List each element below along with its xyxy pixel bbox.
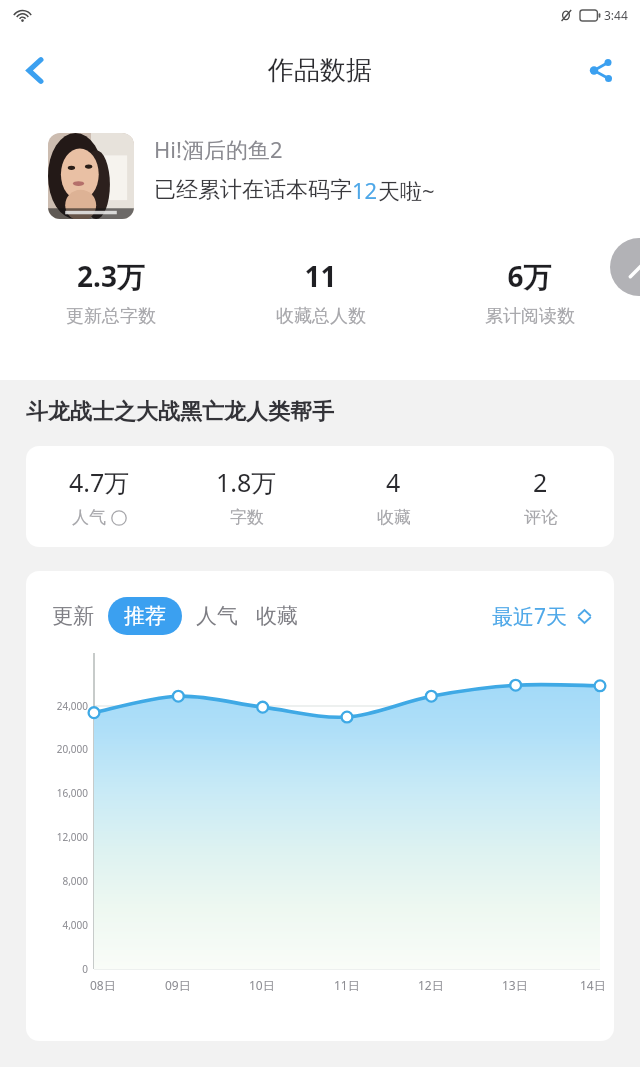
staticText: 推荐 (124, 603, 166, 629)
staticText: 斗龙战士之大战黑亡龙人类帮手 (26, 398, 334, 426)
button[interactable]: Edit (610, 238, 640, 296)
staticText: 0 (82, 962, 88, 976)
staticText: 12,000 (56, 830, 88, 844)
staticText: 4.7万 (69, 465, 130, 499)
staticText: Hi!酒后的鱼2 (154, 134, 283, 164)
staticText: 14日 (580, 977, 606, 993)
button[interactable]: 6万 (425, 257, 634, 328)
staticText: 3:44 (604, 7, 628, 23)
staticText: 收藏 (256, 603, 298, 629)
button[interactable]: 最近7天 (489, 599, 596, 634)
staticText: 16,000 (56, 786, 88, 800)
staticText: 12 (352, 175, 378, 205)
staticText: 4,000 (62, 918, 88, 932)
staticText: 收藏 (377, 507, 411, 528)
staticText: 累计阅读数 (485, 305, 575, 328)
button[interactable]: Share (574, 43, 628, 97)
staticText: 6万 (507, 257, 552, 295)
staticText: 更新总字数 (66, 305, 156, 328)
staticText: 已经累计在话本码字 (154, 176, 352, 204)
button[interactable]: 收藏 (254, 597, 300, 635)
staticText: 4 (386, 465, 401, 499)
staticText: 08日 (90, 977, 116, 993)
button[interactable]: 人气 (194, 597, 240, 635)
staticText: 2.3万 (77, 257, 145, 295)
button[interactable]: Back (8, 43, 62, 97)
staticText: 字数 (230, 507, 264, 528)
staticText: 天啦~ (378, 175, 435, 205)
button[interactable]: 11 (216, 257, 425, 328)
button[interactable]: 推荐 (108, 597, 182, 635)
button[interactable]: 4.7万 (26, 446, 614, 547)
staticText: 8,000 (62, 874, 88, 888)
staticText: 1.8万 (216, 465, 277, 499)
staticText: 20,000 (56, 742, 88, 756)
staticText: 12日 (418, 977, 444, 993)
staticText: 11 (304, 257, 337, 295)
staticText: 13日 (502, 977, 528, 993)
staticText: 11日 (334, 977, 360, 993)
staticText: 2 (533, 465, 548, 499)
staticText: 收藏总人数 (276, 305, 366, 328)
staticText: 作品数据 (268, 54, 372, 87)
staticText: 人气 (72, 507, 106, 528)
staticText: 10日 (249, 977, 275, 993)
staticText: 评论 (524, 507, 558, 528)
staticText: 24,000 (56, 699, 88, 713)
button[interactable]: 更新 (50, 597, 96, 635)
staticText: 最近7天 (492, 602, 568, 631)
staticText: 09日 (165, 977, 191, 993)
staticText: 更新 (52, 603, 94, 629)
button[interactable]: 2.3万 (6, 257, 216, 328)
staticText: 人气 (196, 603, 238, 629)
button[interactable]: Avatar (48, 133, 134, 219)
